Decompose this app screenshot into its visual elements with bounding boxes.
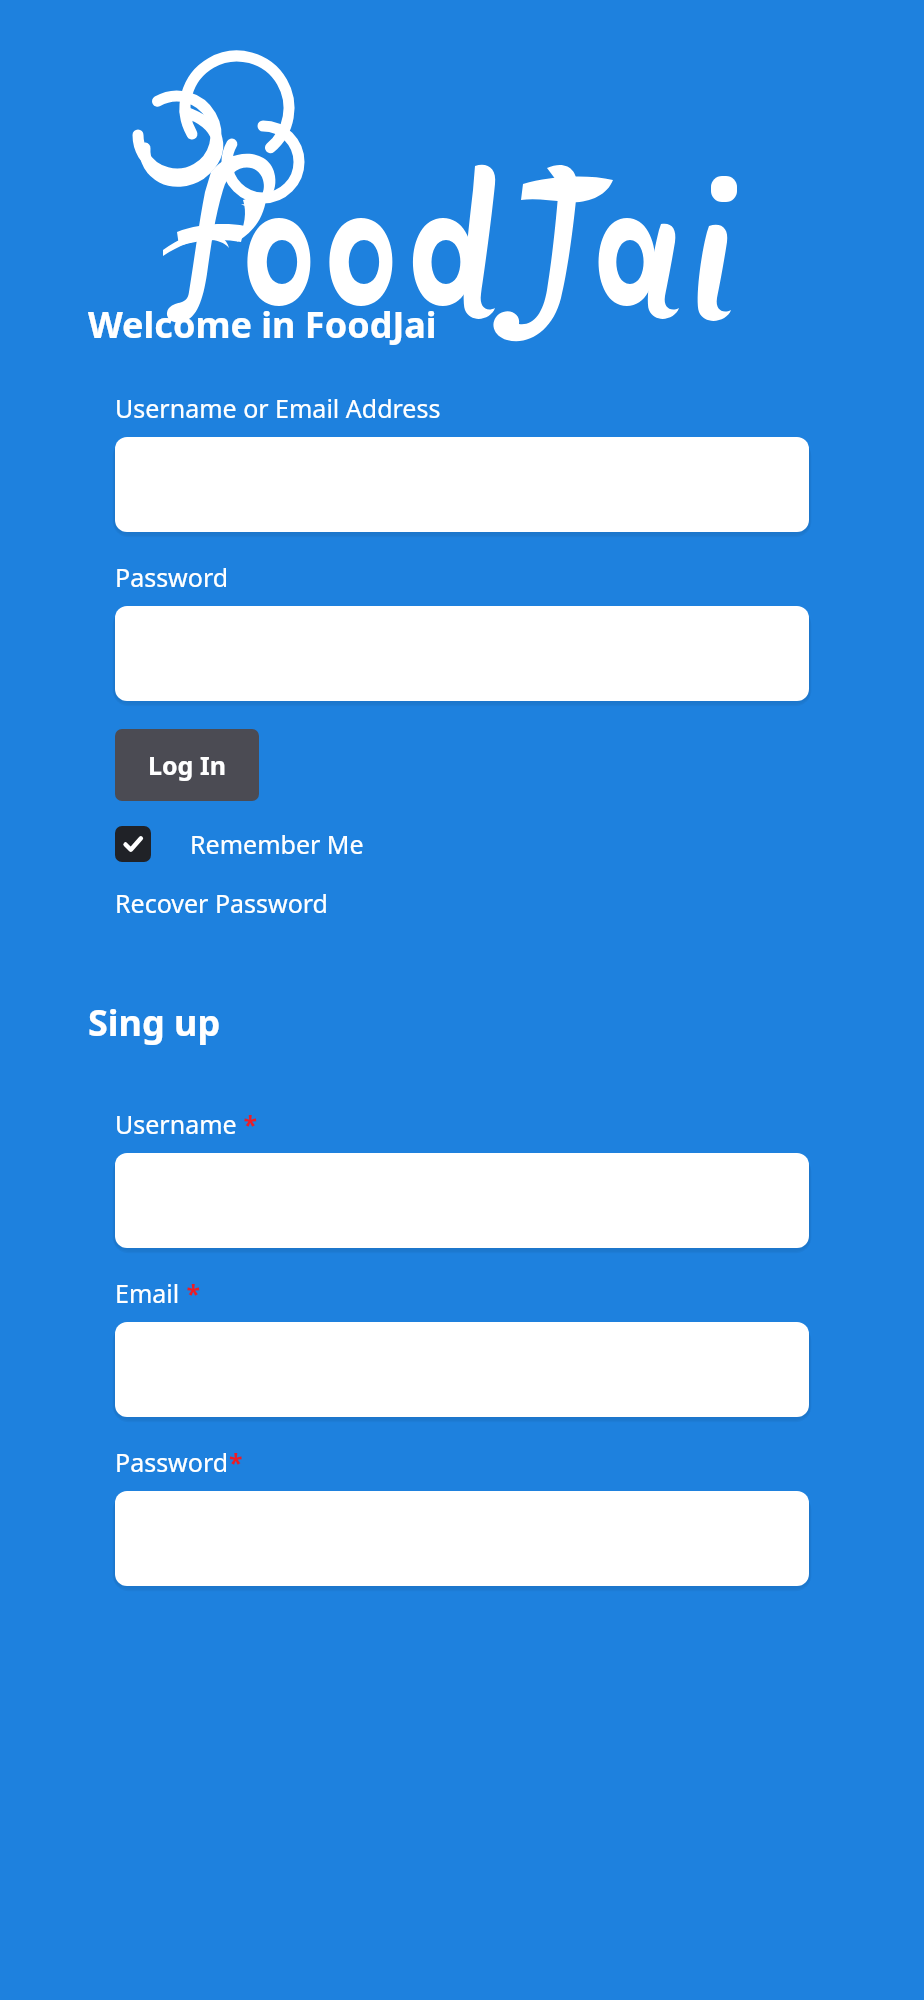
other: FoodJai logo <box>0 0 924 300</box>
button[interactable]: Remember Me <box>115 826 364 862</box>
button[interactable] <box>115 1491 809 1586</box>
staticText: Password <box>115 1445 229 1479</box>
button[interactable]: Log In <box>115 729 259 801</box>
button[interactable] <box>115 437 809 532</box>
button[interactable] <box>115 606 809 701</box>
staticText: Remember Me <box>190 827 364 861</box>
staticText: Sing up <box>88 998 221 1047</box>
button[interactable]: Recover Password <box>115 886 328 920</box>
staticText: Password <box>115 560 229 594</box>
staticText: Username or Email Address <box>115 391 441 425</box>
staticText: Username <box>115 1107 237 1141</box>
staticText: * <box>237 1107 258 1141</box>
staticText: Welcome in FoodJai <box>88 300 437 349</box>
button[interactable] <box>115 1322 809 1417</box>
staticText: Recover Password <box>115 886 328 920</box>
staticText: * <box>180 1276 201 1310</box>
button[interactable] <box>115 1153 809 1248</box>
staticText: Log In <box>148 748 226 782</box>
staticText: * <box>229 1445 243 1479</box>
staticText: Email <box>115 1276 180 1310</box>
